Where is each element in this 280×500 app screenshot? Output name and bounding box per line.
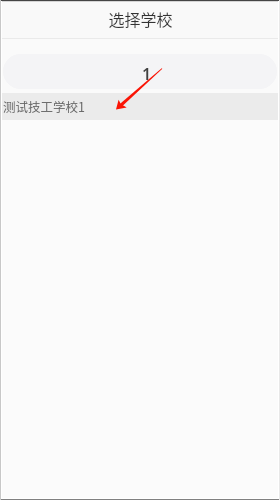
button[interactable]: 测试技工学校1 (0, 93, 280, 120)
staticText: 1 (142, 63, 152, 85)
staticText: 测试技工学校1 (3, 97, 85, 115)
button[interactable]: 选择学校 (0, 0, 280, 38)
button[interactable]: 搜索学校 (3, 54, 277, 89)
staticText: 选择学校 (108, 7, 173, 30)
